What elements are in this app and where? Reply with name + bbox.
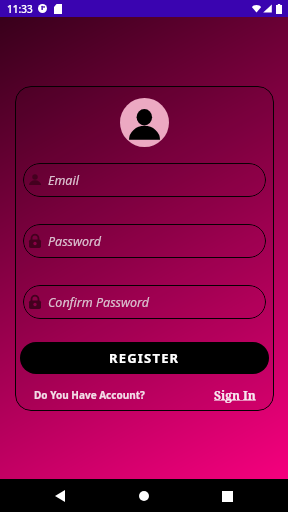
staticText: Email: [48, 172, 79, 189]
staticText: Do You Have Account?: [34, 388, 145, 402]
button[interactable]: Confirm Password: [29, 285, 266, 319]
button[interactable]: Back: [45, 481, 75, 511]
staticText: 11:33: [7, 2, 33, 16]
staticText: REGISTER: [109, 349, 180, 367]
staticText: Password: [48, 233, 102, 250]
button[interactable]: Home: [129, 481, 159, 511]
button[interactable]: Password: [29, 224, 266, 258]
button[interactable]: Email: [29, 163, 266, 197]
button[interactable]: Sign In: [214, 387, 256, 403]
button[interactable]: REGISTER: [20, 342, 269, 374]
staticText: Confirm Password: [48, 294, 150, 311]
button[interactable]: Recents: [212, 481, 242, 511]
